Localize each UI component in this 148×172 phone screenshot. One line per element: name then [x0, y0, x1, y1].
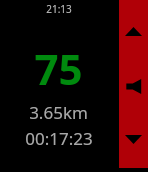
staticText: 21:13 [46, 2, 72, 16]
button[interactable]: Mute [119, 62, 148, 110]
staticText: 75 [34, 40, 83, 97]
button[interactable]: Volume down [119, 110, 148, 168]
button[interactable]: Volume up [119, 0, 148, 62]
staticText: 3.65km [29, 101, 88, 124]
staticText: 00:17:23 [25, 127, 93, 150]
